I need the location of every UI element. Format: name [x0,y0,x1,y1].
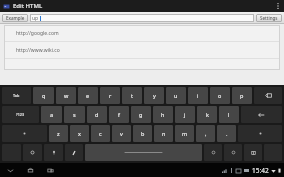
button[interactable]: Tab [2,87,31,104]
staticText: r [109,92,112,99]
staticText: v [120,130,123,137]
staticText: http://www.wiki.co [16,47,60,54]
button[interactable]: r [100,87,120,104]
staticText: h [161,111,165,118]
button[interactable]: Example [2,14,28,22]
staticText: d [95,111,99,118]
button[interactable]: c [91,125,110,142]
staticText: Edit HTML [13,2,43,10]
staticText: a [50,111,54,118]
button[interactable]: , [196,125,215,142]
button[interactable]: http://www.wiki.co [4,42,280,58]
staticText: g [139,111,143,118]
button[interactable]: x [70,125,89,142]
button[interactable]: Change language [23,144,42,161]
button[interactable]: Keyboard layout [244,144,262,161]
button[interactable]: Settings [256,14,282,22]
button[interactable]: j [175,106,195,123]
button[interactable]: Enter [241,106,282,123]
staticText: f [118,111,120,118]
button[interactable]: k [197,106,217,123]
button[interactable]: Recent apps [45,165,55,175]
staticText: t [131,92,133,99]
button[interactable]: w [56,87,76,104]
staticText: w [64,92,69,99]
button[interactable]: b [133,125,152,142]
button[interactable]: More options [272,0,284,12]
button[interactable]: y [144,87,164,104]
button[interactable]: o [210,87,230,104]
button[interactable]: s [64,106,85,123]
staticText: y [153,92,156,99]
button[interactable]: Emoji [204,144,222,161]
staticText: z [57,130,60,137]
button[interactable]: z [49,125,68,142]
button[interactable]: Smiley [224,144,242,161]
button[interactable]: Shift [2,125,47,142]
button[interactable]: . [217,125,236,142]
button[interactable]: l [219,106,239,123]
button[interactable]: http://google.com [4,25,280,41]
button[interactable]: t [122,87,142,104]
button[interactable]: v [112,125,131,142]
button[interactable]: ?123 [2,106,39,123]
staticText: , [205,130,207,137]
staticText: x [78,130,81,137]
button[interactable]: n [154,125,173,142]
button[interactable]: p [232,87,252,104]
staticText: s [73,111,76,118]
staticText: q [42,92,46,99]
staticText: b [141,130,145,137]
staticText: m [182,130,188,137]
button[interactable]: m [175,125,194,142]
button[interactable]: up [30,14,254,22]
staticText: i [197,92,199,99]
button[interactable]: h [153,106,173,123]
staticText: o [218,92,222,99]
button[interactable]: g [131,106,151,123]
button[interactable]: Voice input [44,144,63,161]
button[interactable]: d [87,106,107,123]
button[interactable]: Home [25,165,35,175]
staticText: c [99,130,102,137]
staticText: up [32,15,39,22]
button[interactable]: Back [5,165,15,175]
staticText: l [228,111,230,118]
button[interactable]: q [33,87,54,104]
staticText: Settings [260,15,278,21]
button[interactable]: e [78,87,98,104]
staticText: ?123 [16,112,25,117]
staticText: u [174,92,178,99]
staticText: http://google.com [16,30,59,37]
staticText: Tab [13,93,20,98]
button[interactable]: Shift [238,125,282,142]
staticText: 15:42 [252,166,269,175]
staticText: j [184,111,186,118]
staticText: Example [6,15,25,21]
button[interactable]: i [188,87,208,104]
staticText: n [162,130,166,137]
staticText: p [240,92,244,99]
button[interactable]: f [109,106,129,123]
button[interactable]: Backspace [254,87,282,104]
button[interactable]: Handwriting [65,144,83,161]
button[interactable]: a [41,106,62,123]
staticText: k [206,111,209,118]
button[interactable]: Space [85,144,202,161]
staticText: e [86,92,90,99]
button[interactable]: u [166,87,186,104]
staticText: . [226,130,228,137]
